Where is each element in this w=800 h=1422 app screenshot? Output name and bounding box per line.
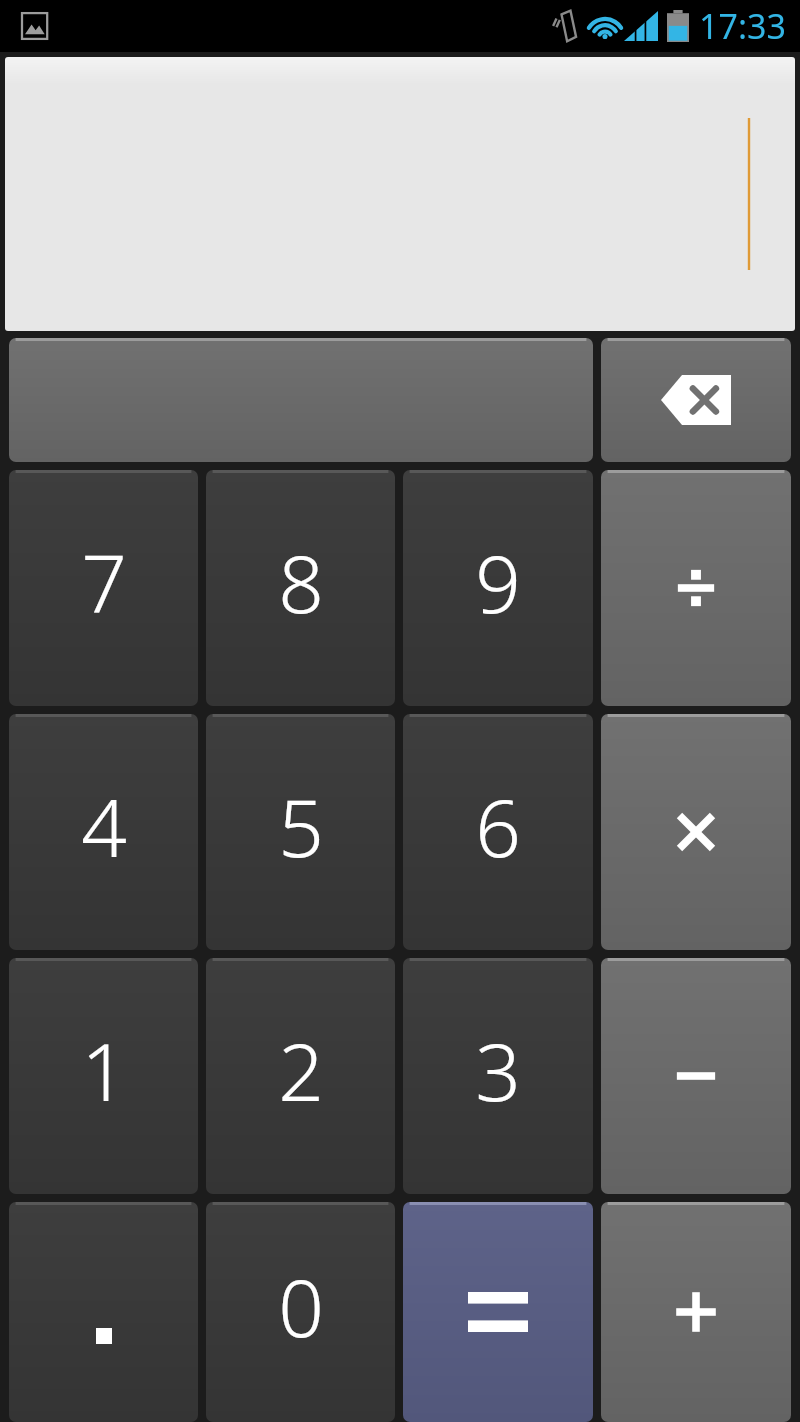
button[interactable]: Plus: [601, 1202, 791, 1422]
staticText: 0: [278, 1251, 324, 1360]
button[interactable]: 2: [206, 958, 395, 1194]
button[interactable]: 3: [403, 958, 593, 1194]
button[interactable]: Equals: [403, 1202, 593, 1422]
staticText: 3: [475, 1015, 521, 1124]
staticText: 7: [81, 527, 127, 636]
button[interactable]: Clear: [9, 338, 593, 462]
button[interactable]: Decimal point: [9, 1202, 198, 1422]
staticText: 6: [475, 771, 521, 880]
button[interactable]: 4: [9, 714, 198, 950]
staticText: 5: [278, 771, 324, 880]
button[interactable]: Multiply: [601, 714, 791, 950]
staticText: 2: [278, 1015, 324, 1124]
button[interactable]: 5: [206, 714, 395, 950]
button[interactable]: 6: [403, 714, 593, 950]
button[interactable]: 1: [9, 958, 198, 1194]
button[interactable]: Backspace: [601, 338, 791, 462]
button[interactable]: Minus: [601, 958, 791, 1194]
button[interactable]: 0: [206, 1202, 395, 1422]
button[interactable]: 8: [206, 470, 395, 706]
staticText: 4: [81, 771, 127, 880]
staticText: 1: [81, 1015, 127, 1124]
button[interactable]: 9: [403, 470, 593, 706]
staticText: 9: [475, 527, 521, 636]
button[interactable]: [5, 57, 795, 331]
staticText: 8: [278, 527, 324, 636]
button[interactable]: 7: [9, 470, 198, 706]
button[interactable]: Divide: [601, 470, 791, 706]
staticText: 17:33: [699, 3, 786, 49]
